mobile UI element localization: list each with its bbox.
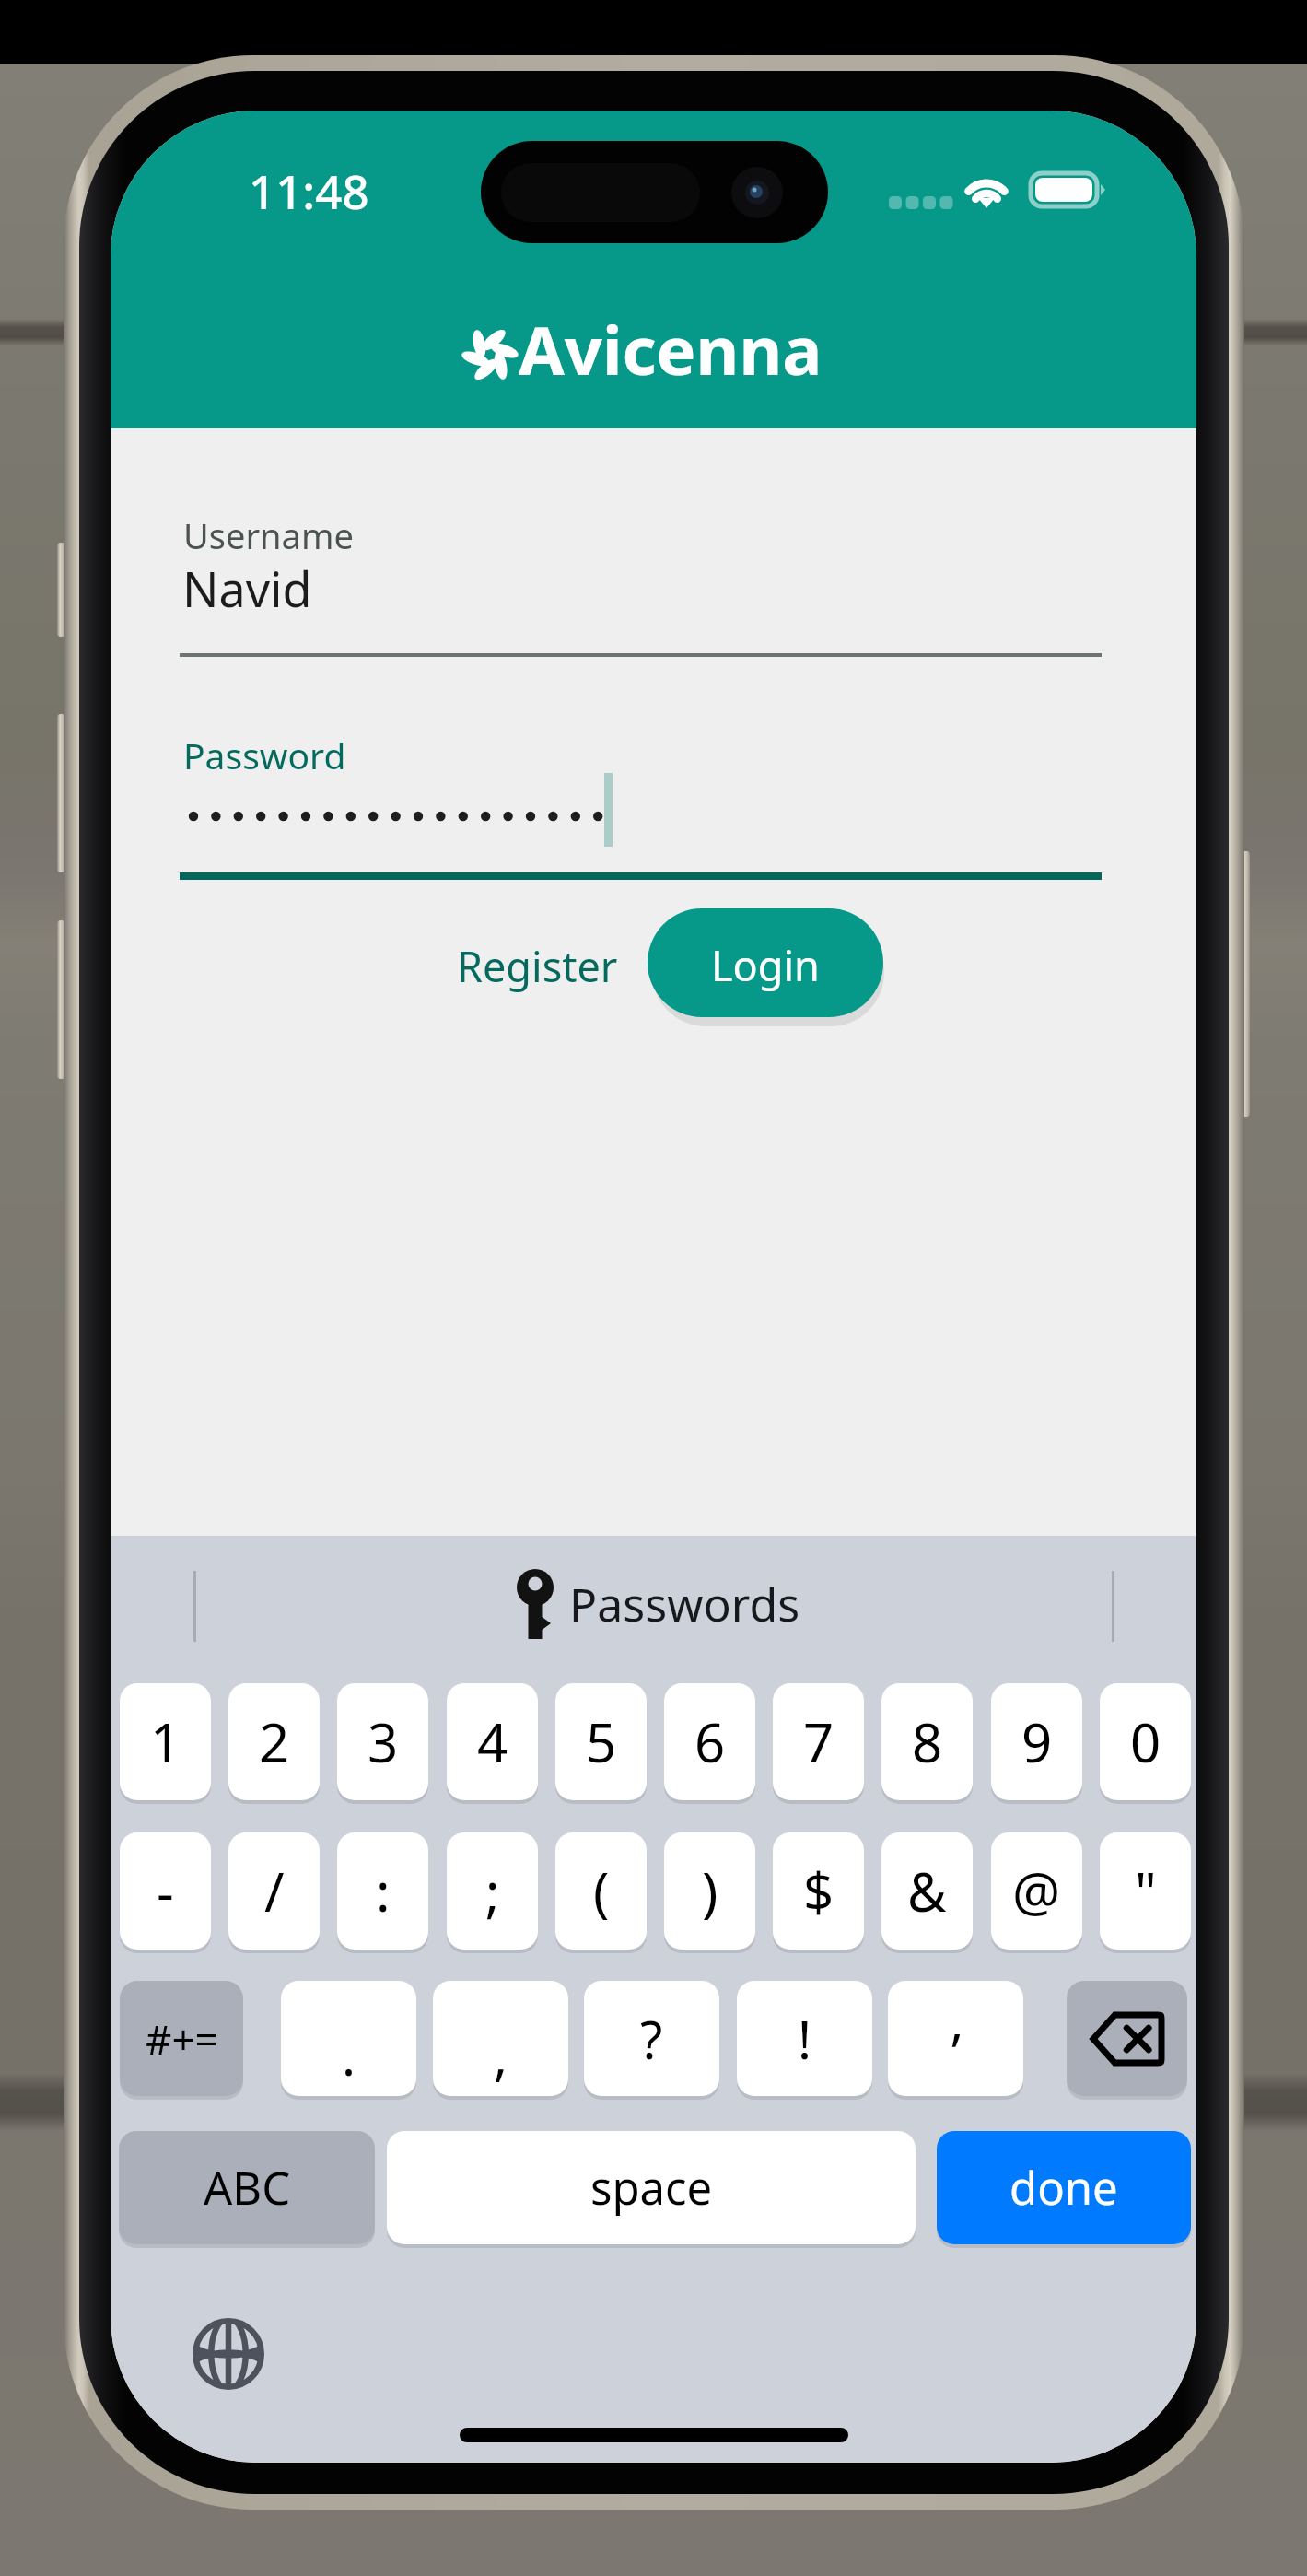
button[interactable]: Switch keyboard <box>182 2308 274 2400</box>
staticText: ABC <box>204 2157 291 2219</box>
staticText: 8 <box>912 1705 943 1778</box>
button[interactable]: ! <box>737 1981 872 2096</box>
button[interactable]: @ <box>991 1832 1082 1950</box>
button[interactable]: done <box>937 2131 1191 2244</box>
button[interactable]: 9 <box>991 1683 1082 1800</box>
staticText: 7 <box>803 1705 834 1778</box>
staticText: done <box>1009 2157 1118 2219</box>
button[interactable]: " <box>1100 1832 1191 1950</box>
button[interactable]: $ <box>773 1832 864 1950</box>
button[interactable]: Backspace <box>1067 1981 1187 2096</box>
button[interactable]: 5 <box>555 1683 647 1800</box>
staticText: 9 <box>1021 1705 1053 1778</box>
button[interactable]: . <box>281 1981 416 2096</box>
staticText: 1 <box>150 1705 181 1778</box>
staticText: , <box>494 2020 508 2090</box>
button[interactable]: 1 <box>120 1683 211 1800</box>
staticText: Password <box>183 731 346 779</box>
button[interactable]: Passwords <box>198 1543 1107 1669</box>
button[interactable]: , <box>433 1981 568 2096</box>
button[interactable]: & <box>881 1832 973 1950</box>
button[interactable]: 2 <box>228 1683 320 1800</box>
staticText: 2 <box>259 1705 290 1778</box>
button[interactable]: 3 <box>337 1683 428 1800</box>
button[interactable]: #+= <box>120 1981 243 2096</box>
button[interactable]: Login <box>648 908 883 1017</box>
staticText: " <box>1135 1855 1157 1927</box>
button[interactable]: ? <box>584 1981 719 2096</box>
staticText: Passwords <box>569 1573 800 1635</box>
button[interactable]: ’ <box>888 1981 1023 2096</box>
staticText: 5 <box>586 1705 617 1778</box>
staticText: 6 <box>694 1705 726 1778</box>
button[interactable]: - <box>120 1832 211 1950</box>
staticText: / <box>264 1855 285 1927</box>
staticText: #+= <box>146 2011 218 2067</box>
staticText: 4 <box>477 1705 508 1778</box>
staticText: ; <box>485 1855 500 1927</box>
button[interactable]: 4 <box>447 1683 538 1800</box>
staticText: - <box>157 1855 174 1927</box>
staticText: ’ <box>951 2017 961 2087</box>
staticText: 0 <box>1130 1705 1161 1778</box>
button[interactable]: 7 <box>773 1683 864 1800</box>
button[interactable]: ( <box>555 1832 647 1950</box>
button[interactable]: Register <box>431 908 643 1019</box>
staticText: Username <box>183 511 354 559</box>
staticText: $ <box>803 1855 834 1927</box>
staticText: ? <box>640 2004 663 2074</box>
staticText: ! <box>798 2004 812 2074</box>
staticText: 3 <box>368 1705 399 1778</box>
staticText: 11:48 <box>249 158 369 222</box>
button[interactable]: 0 <box>1100 1683 1191 1800</box>
staticText: Avicenna <box>519 304 823 394</box>
button[interactable]: ; <box>447 1832 538 1950</box>
button[interactable]: / <box>228 1832 320 1950</box>
staticText: ) <box>702 1855 718 1927</box>
button[interactable]: 6 <box>664 1683 755 1800</box>
staticText: Navid <box>182 556 312 621</box>
button[interactable]: space <box>387 2131 916 2244</box>
button[interactable]: : <box>337 1832 428 1950</box>
staticText: Register <box>457 938 618 994</box>
staticText: Login <box>711 937 820 993</box>
staticText: . <box>342 2020 356 2090</box>
staticText: ( <box>593 1855 610 1927</box>
staticText: : <box>376 1855 391 1927</box>
staticText: space <box>590 2157 713 2219</box>
staticText: & <box>907 1855 947 1927</box>
button[interactable]: ABC <box>119 2131 375 2244</box>
button[interactable]: ) <box>664 1832 755 1950</box>
staticText: @ <box>1012 1855 1061 1927</box>
button[interactable]: 8 <box>881 1683 973 1800</box>
